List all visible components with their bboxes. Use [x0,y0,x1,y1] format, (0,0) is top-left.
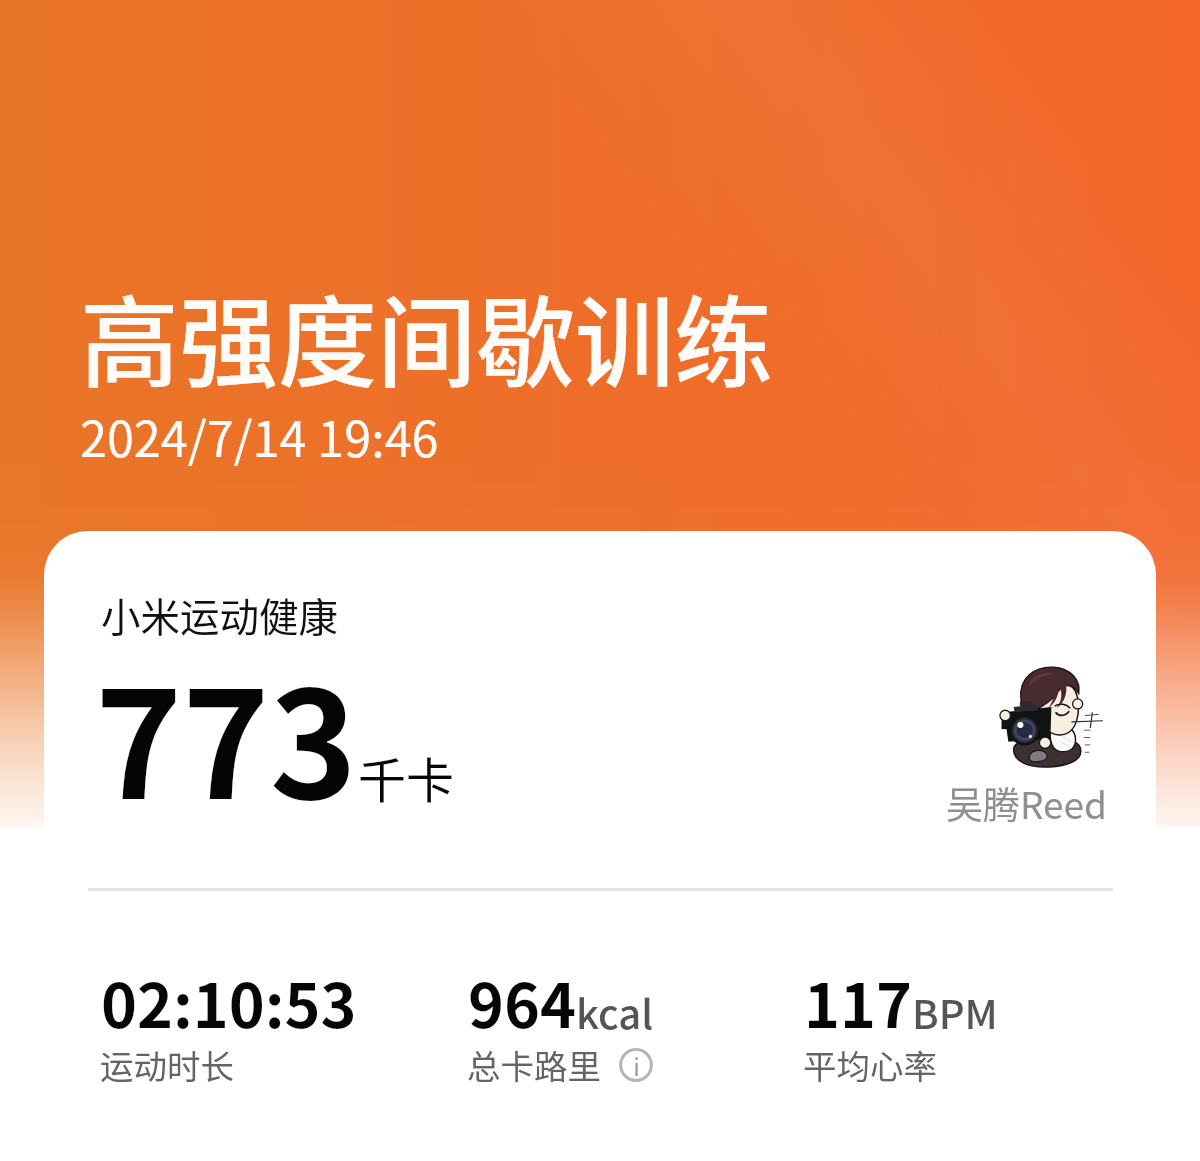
staticText: 02:10:53 [101,957,357,1045]
staticText: 高强度间歇训练 [80,264,773,407]
staticText: 2024/7/14 19:46 [80,401,439,471]
staticText: 117 [804,957,912,1045]
staticText: 总卡路里 [467,1040,601,1089]
button[interactable] [87,948,387,1098]
staticText: 773 [95,627,357,841]
staticText: 运动时长 [100,1040,234,1089]
staticText: 千卡 [358,742,455,812]
staticText: 964 [468,957,576,1045]
staticText: 平均心率 [803,1040,937,1089]
button[interactable]: User avatar [1001,663,1106,768]
staticText: i [633,1048,640,1082]
staticText: kcal [576,983,654,1041]
button[interactable]: Calorie info [619,1048,653,1082]
staticText: 小米运动健康 [101,586,338,643]
staticText: BPM [912,983,998,1041]
button[interactable] [790,948,1090,1098]
staticText: 吴腾Reed [946,776,1108,830]
button[interactable] [454,948,754,1098]
button[interactable] [44,531,1156,1161]
